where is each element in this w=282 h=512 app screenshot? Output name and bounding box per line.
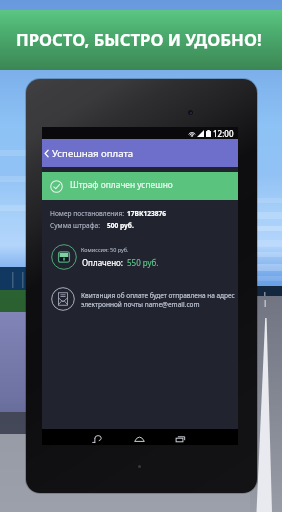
staticText: 500 руб. <box>107 221 134 230</box>
button[interactable]: Back <box>42 139 238 167</box>
button[interactable]: Home <box>130 433 149 444</box>
staticText: ПРОСТО, БЫСТРО И УДОБНО! <box>16 28 262 51</box>
button[interactable]: Back <box>88 433 107 444</box>
staticText: 12:00 <box>213 128 234 139</box>
other: Back <box>44 149 49 158</box>
staticText: Номер постановления: <box>50 209 125 218</box>
staticText: Комиссия: 50 руб. <box>81 246 129 253</box>
staticText: Оплачено: <box>82 257 124 268</box>
staticText: Успешная оплата <box>52 147 134 160</box>
button[interactable]: Recents <box>171 433 190 444</box>
staticText: 17ВК123876 <box>127 209 167 218</box>
staticText: Сумма штрафа: <box>50 221 101 230</box>
staticText: Штраф оплачен успешно <box>70 179 173 190</box>
staticText: Квитанция об оплате будет отправлена на … <box>81 291 235 309</box>
staticText: 550 руб. <box>127 257 159 268</box>
